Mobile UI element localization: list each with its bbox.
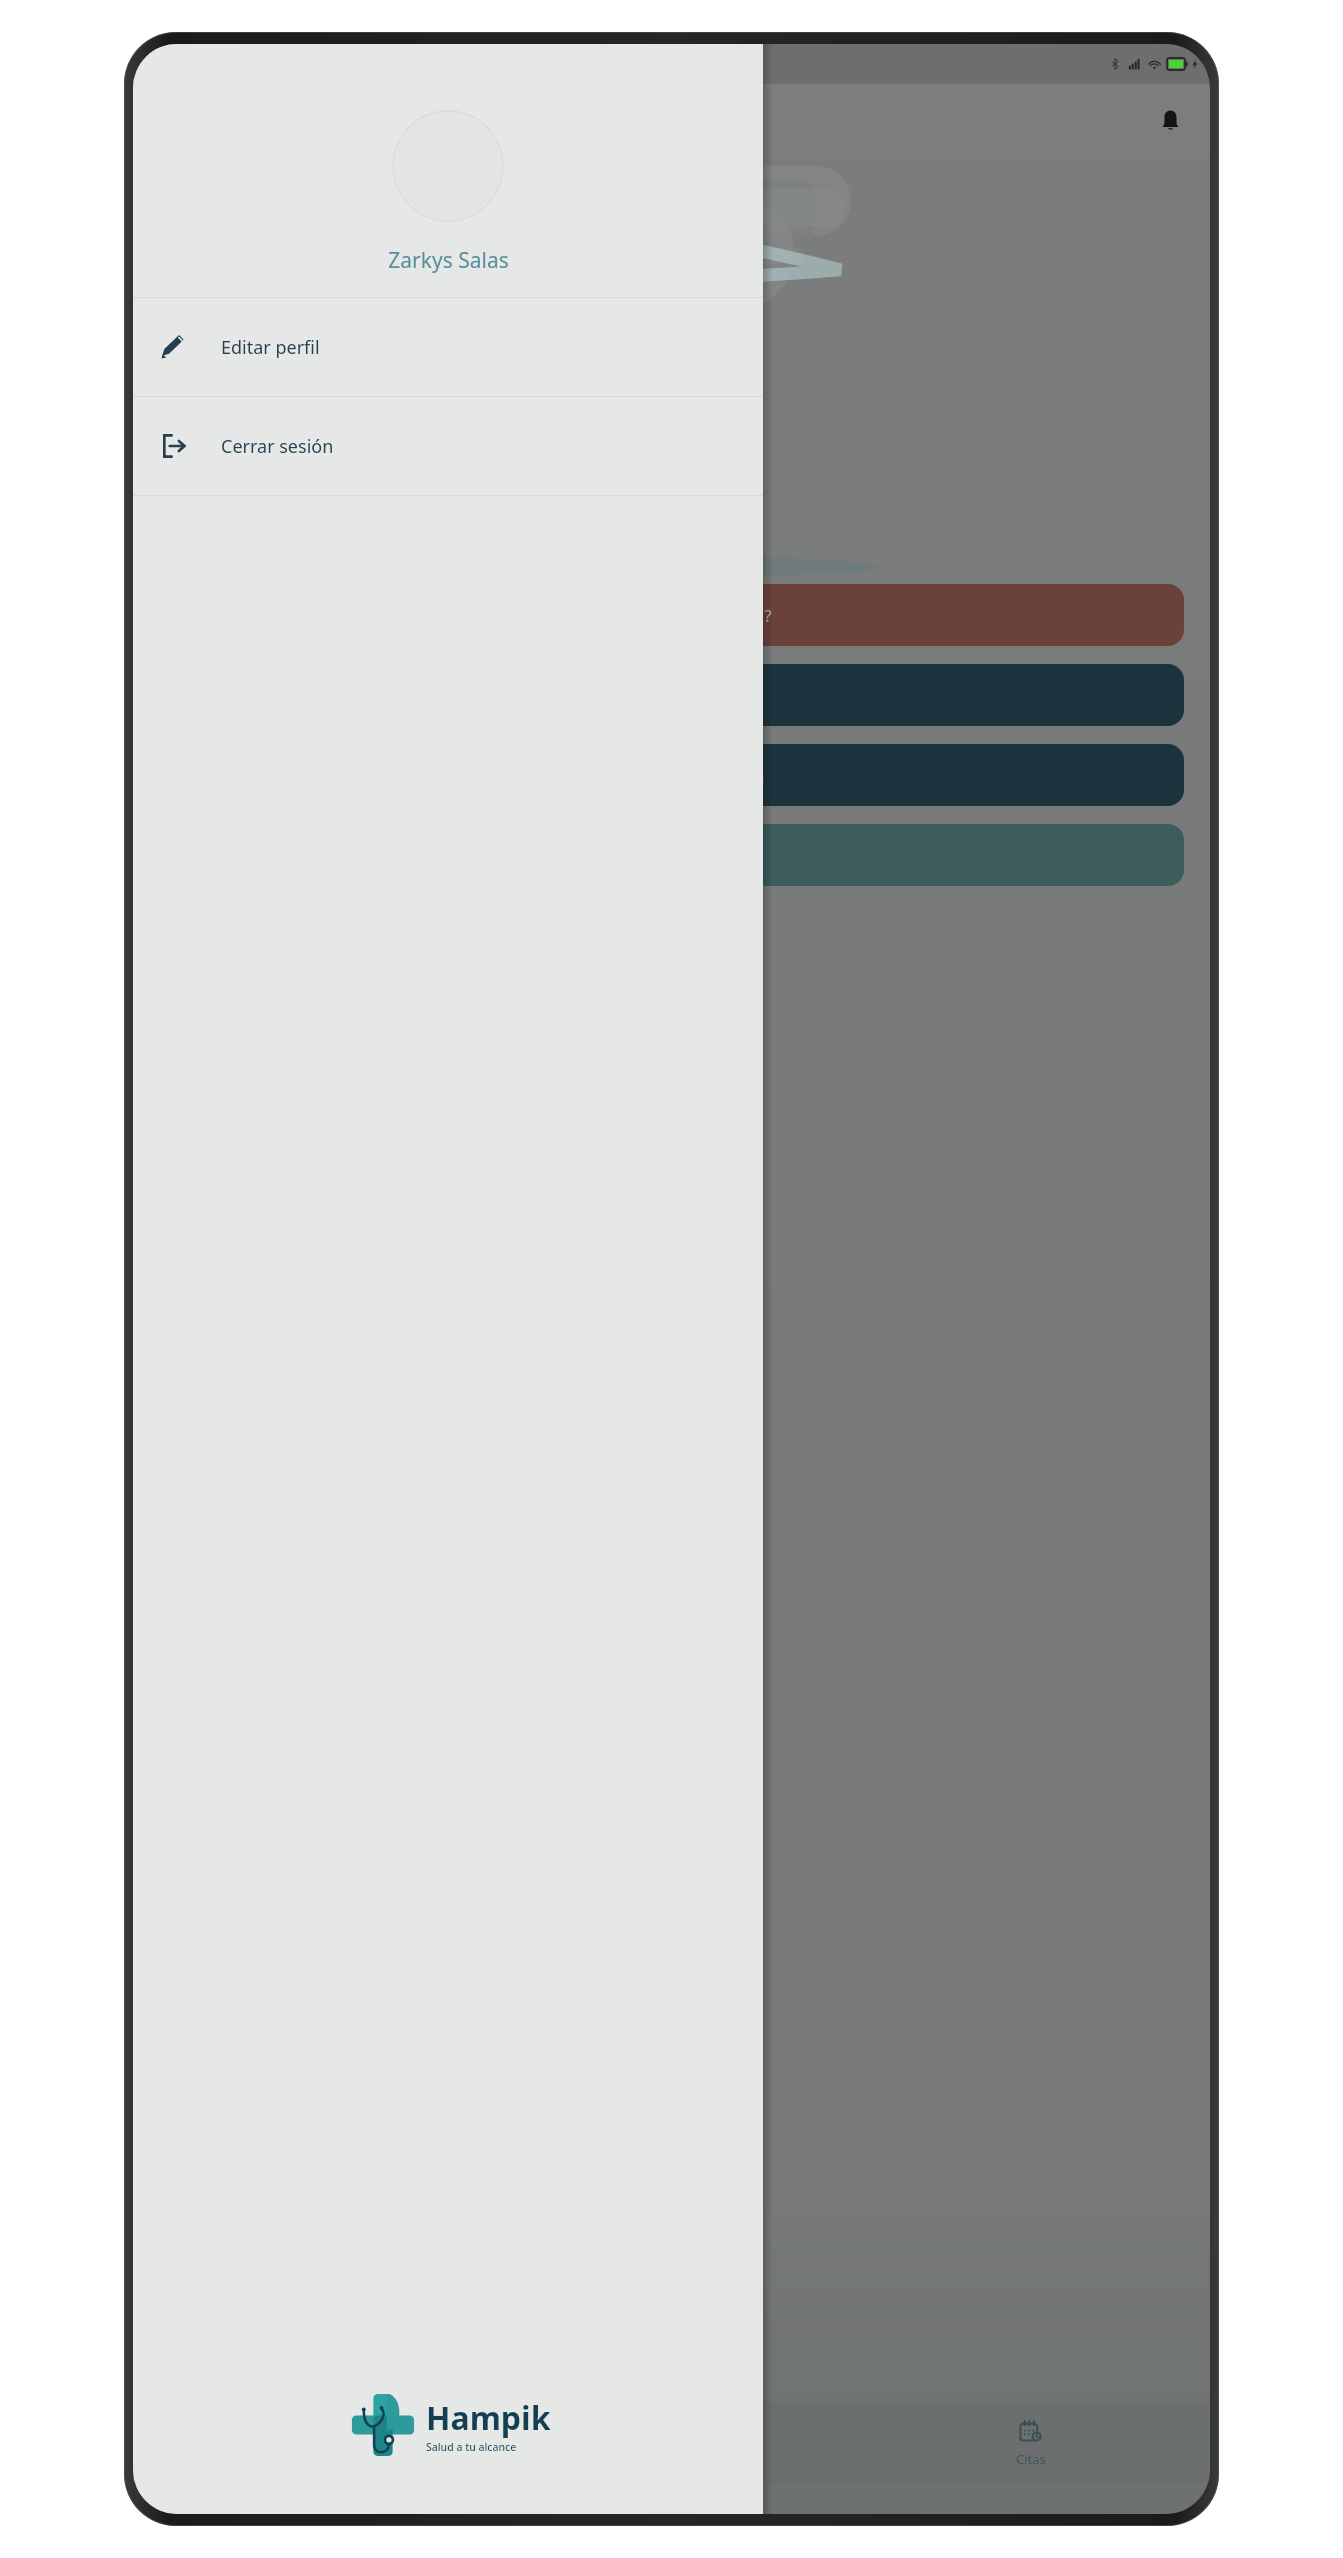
button[interactable]: Editar perfil xyxy=(133,298,763,396)
button[interactable]: Registrar una medición xyxy=(159,744,1184,806)
button[interactable]: Doctores xyxy=(492,2402,851,2484)
button[interactable]: Inicio xyxy=(133,2402,492,2484)
staticText: 21:56 | 8,7KB/s xyxy=(146,55,243,73)
staticText: Zarkys Salas xyxy=(388,246,509,275)
staticText: Hampik xyxy=(426,2396,551,2440)
button[interactable]: Notificaciones xyxy=(1148,98,1192,142)
button[interactable]: Agendar una cita xyxy=(159,664,1184,726)
staticText: ¿Tienes una emergencia? xyxy=(572,604,772,627)
staticText: Salud a tu alcance xyxy=(426,2440,517,2454)
button[interactable]: ¿Tienes una emergencia? xyxy=(159,584,1184,646)
button[interactable]: Cerrar sesión xyxy=(133,397,763,495)
staticText: Editar perfil xyxy=(221,335,320,360)
button[interactable]: Citas xyxy=(851,2402,1210,2484)
button[interactable]: ¿Qué es Hampik? xyxy=(159,824,1184,886)
staticText: Cerrar sesión xyxy=(221,434,334,459)
staticText: Citas xyxy=(1016,2450,1046,2468)
staticText: Registrar una medición xyxy=(579,764,765,787)
